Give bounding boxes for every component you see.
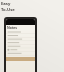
staticText: To-Use	[1, 7, 15, 13]
staticText: Easy	[1, 1, 11, 7]
staticText: Notes	[7, 25, 18, 30]
